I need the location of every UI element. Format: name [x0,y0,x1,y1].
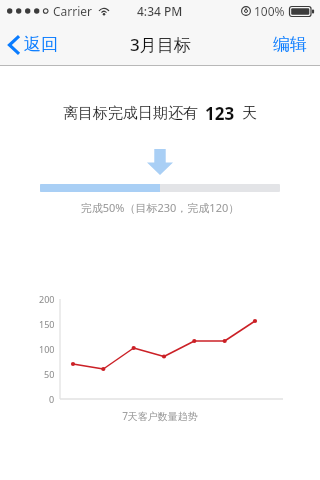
staticText: 天 [242,104,257,123]
staticText: 返回 [24,34,58,55]
staticText: 0 [49,393,55,405]
other: Progress indicator [147,149,173,175]
button[interactable]: 编辑 [260,25,320,64]
staticText: 123 [205,102,235,125]
button[interactable]: 返回 [0,27,70,62]
staticText: 离目标完成日期还有 [63,104,198,123]
staticText: 7天客户数量趋势 [0,409,320,423]
staticText: 完成50%（目标230，完成120） [0,200,320,215]
staticText: 100 [39,343,55,355]
staticText: 4:34 PM [137,3,183,19]
staticText: 200 [39,293,55,305]
staticText: 50 [44,368,55,380]
staticText: 100% [254,3,285,19]
staticText: 编辑 [273,34,307,55]
staticText: Carrier [53,3,93,19]
staticText: 150 [39,318,55,330]
staticText: 3月目标 [130,33,191,56]
